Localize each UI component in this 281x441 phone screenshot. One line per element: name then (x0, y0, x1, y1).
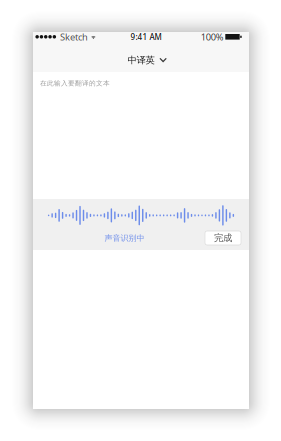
staticText: 声音识别中 (104, 233, 144, 243)
staticText: 100% (201, 31, 224, 43)
staticText: 在此输入要翻译的文本 (40, 79, 110, 87)
button[interactable]: 中译英 (33, 44, 249, 72)
staticText: 9:41 AM (130, 31, 161, 42)
button[interactable]: 完成 (205, 231, 241, 245)
staticText: Sketch (60, 31, 88, 43)
staticText: 中译英 (127, 54, 154, 66)
staticText: 完成 (214, 232, 232, 244)
